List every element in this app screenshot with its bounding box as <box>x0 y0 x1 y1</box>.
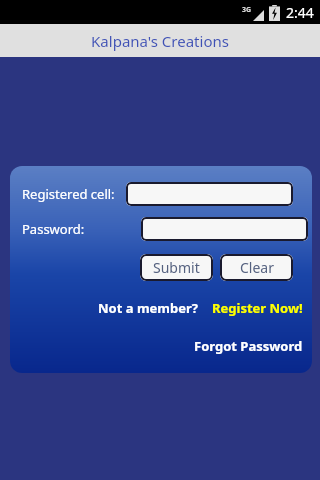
staticText: Password: <box>22 220 85 238</box>
button[interactable]: Forgot Password <box>194 337 303 355</box>
staticText: Kalpana's Creations <box>91 31 229 51</box>
button[interactable]: Not a member? <box>98 299 198 317</box>
button[interactable]: Text input <box>126 182 293 206</box>
staticText: Registered cell: <box>22 185 115 203</box>
staticText: Clear <box>240 258 274 277</box>
staticText: Submit <box>153 258 200 277</box>
button[interactable]: Submit <box>140 254 213 281</box>
button[interactable]: Clear <box>220 254 293 281</box>
button[interactable]: Text input <box>141 217 308 241</box>
staticText: 2:44 <box>286 3 314 22</box>
button[interactable]: Register Now! <box>212 299 303 317</box>
staticText: 3G <box>242 5 252 15</box>
